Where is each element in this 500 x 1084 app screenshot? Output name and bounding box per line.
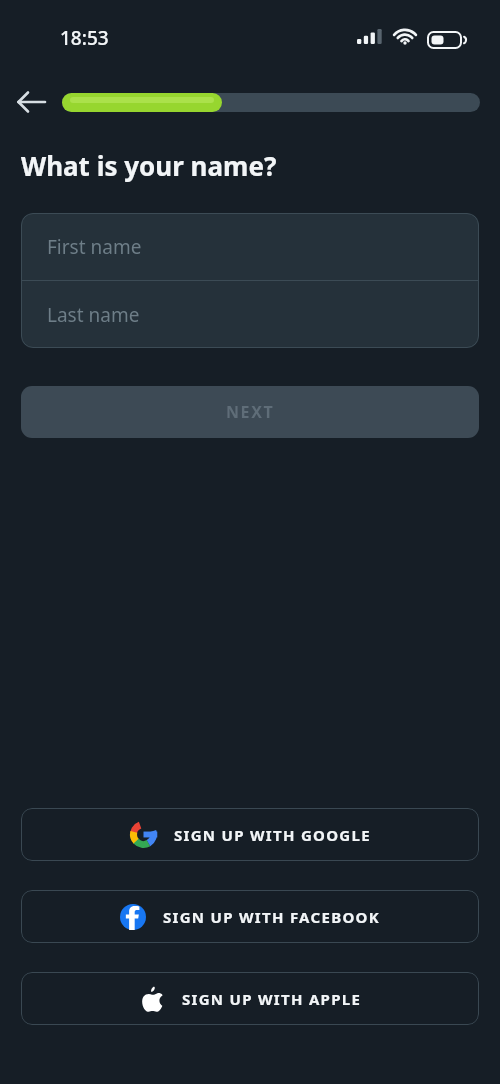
staticText: First name xyxy=(47,234,142,260)
button[interactable]: SIGN UP WITH APPLE xyxy=(21,972,479,1025)
staticText: NEXT xyxy=(226,401,275,423)
button[interactable]: Last name xyxy=(21,281,479,348)
staticText: SIGN UP WITH GOOGLE xyxy=(174,825,371,845)
staticText: Last name xyxy=(47,302,140,328)
button[interactable]: Back xyxy=(0,88,62,116)
button[interactable]: SIGN UP WITH FACEBOOK xyxy=(21,890,479,943)
staticText: SIGN UP WITH APPLE xyxy=(182,989,362,1009)
button[interactable]: First name xyxy=(21,213,479,280)
staticText: What is your name? xyxy=(21,148,277,183)
button[interactable]: NEXT xyxy=(21,386,479,438)
staticText: 18:53 xyxy=(60,25,109,51)
staticText: SIGN UP WITH FACEBOOK xyxy=(163,907,380,927)
button[interactable]: SIGN UP WITH GOOGLE xyxy=(21,808,479,861)
